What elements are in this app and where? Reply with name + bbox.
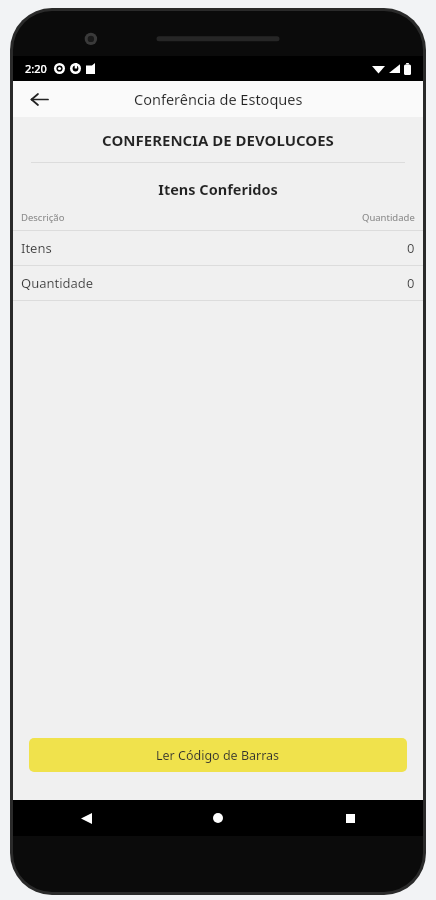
staticText: CONFERENCIA DE DEVOLUCOES [13, 130, 423, 150]
button[interactable]: Itens [13, 231, 423, 265]
button[interactable]: Back [71, 803, 101, 833]
button[interactable]: Quantidade [13, 266, 423, 300]
button[interactable]: Back [21, 81, 57, 117]
staticText: 0 [407, 239, 415, 257]
staticText: 2:20 [25, 61, 47, 76]
staticText: Itens Conferidos [13, 179, 423, 199]
staticText: Quantidade [362, 211, 415, 224]
button[interactable]: Ler Código de Barras [29, 738, 407, 772]
button[interactable]: Home [203, 803, 233, 833]
staticText: Conferência de Estoques [134, 89, 303, 109]
staticText: Itens [21, 239, 52, 257]
staticText: Quantidade [21, 274, 94, 292]
button[interactable]: Recent apps [335, 803, 365, 833]
staticText: Ler Código de Barras [156, 747, 280, 764]
staticText: Descrição [21, 211, 65, 224]
staticText: 0 [407, 274, 415, 292]
